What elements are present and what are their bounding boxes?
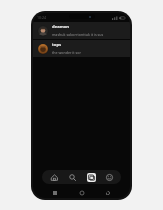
button[interactable]: Recents — [50, 188, 60, 198]
button[interactable]: Profile — [103, 171, 115, 183]
staticText: tops — [52, 42, 62, 48]
button[interactable]: Back — [103, 188, 113, 198]
button[interactable]: Search — [66, 171, 78, 183]
button[interactable]: Home — [48, 171, 60, 183]
button[interactable]: tops — [33, 40, 130, 57]
staticText: mashuk saborrtonttuk it is sus — [52, 32, 104, 37]
staticText: deamon — [52, 24, 70, 30]
button[interactable]: Cards — [85, 171, 97, 183]
button[interactable]: Home — [77, 188, 87, 198]
staticText: the wonder it sor — [52, 50, 81, 55]
staticText: 10:24 — [37, 15, 46, 20]
button[interactable]: deamon — [33, 22, 130, 39]
